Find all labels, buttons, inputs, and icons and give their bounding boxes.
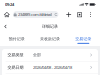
staticText: 全部 <box>33 52 41 57</box>
button[interactable]: Home <box>0 9 13 20</box>
button[interactable]: 交易类型 <box>2 49 98 61</box>
button[interactable]: 预付记录 <box>0 33 33 46</box>
button[interactable]: 交易日期 <box>2 61 98 73</box>
staticText: 未收款记录 <box>40 36 60 41</box>
button[interactable]: Back <box>0 20 11 33</box>
staticText: 2026/04/08 - 2026/04/18 <box>33 65 72 70</box>
button[interactable]: Tabs <box>74 9 85 20</box>
staticText: 交易日期 <box>7 65 23 70</box>
staticText: 交易记录 <box>75 36 91 41</box>
button[interactable]: New tab <box>63 9 74 20</box>
button[interactable]: 未收款记录 <box>33 33 67 46</box>
button[interactable]: 交易记录 <box>67 33 100 46</box>
staticText: 预付记录 <box>9 36 25 41</box>
staticText: 09:24 <box>5 2 14 7</box>
button[interactable]: 234889.com/d/detail <box>13 11 58 18</box>
staticText: 234889.com/d/detail <box>18 12 52 17</box>
staticText: 详细记录 <box>42 24 58 29</box>
staticText: 交易类型 <box>7 52 23 57</box>
button[interactable]: Menu <box>85 9 96 20</box>
